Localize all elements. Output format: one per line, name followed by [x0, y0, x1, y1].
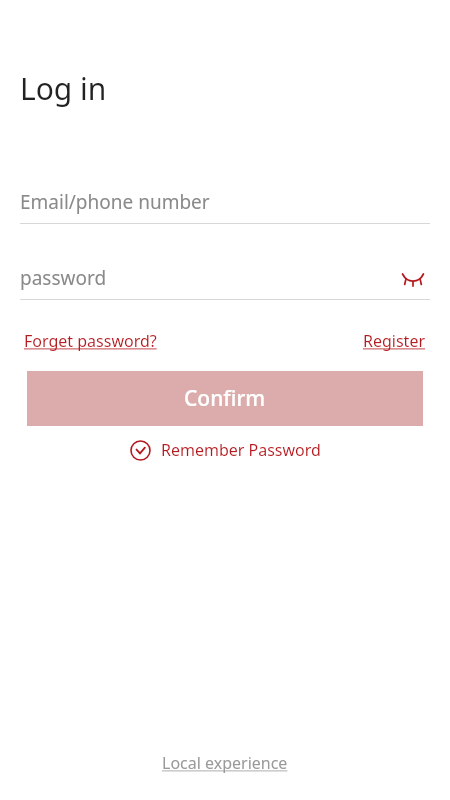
button[interactable]: Show password [396, 261, 430, 295]
button[interactable]: Email/phone number [20, 181, 430, 223]
staticText: password [20, 265, 107, 291]
button[interactable]: Forget password? [24, 330, 157, 352]
staticText: Local experience [162, 752, 288, 774]
staticText: Register [363, 330, 426, 352]
staticText: Email/phone number [20, 189, 210, 215]
button[interactable]: Confirm [27, 371, 423, 426]
staticText: Forget password? [24, 330, 157, 352]
staticText: Log in [20, 68, 107, 109]
button[interactable]: password [20, 257, 430, 299]
button[interactable]: Local experience [162, 752, 288, 774]
button[interactable]: Remember Password [130, 439, 321, 461]
staticText: Confirm [184, 384, 266, 413]
button[interactable]: Register [363, 330, 426, 352]
staticText: Remember Password [161, 439, 321, 461]
